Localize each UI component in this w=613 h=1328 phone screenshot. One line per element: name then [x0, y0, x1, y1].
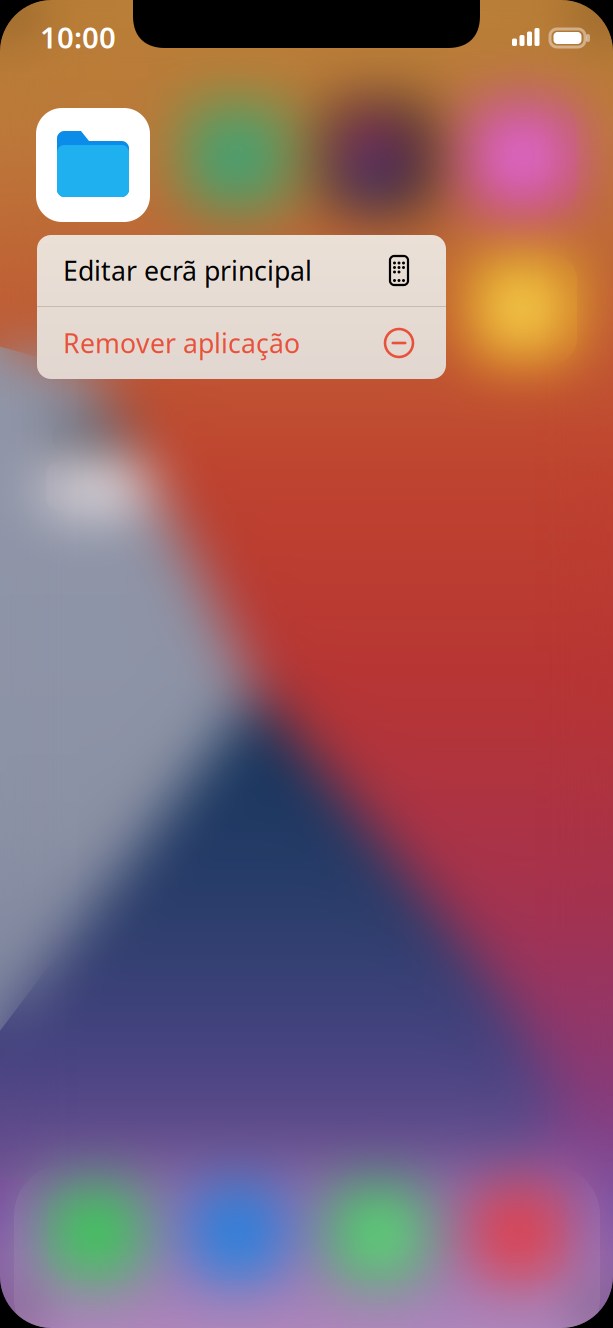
- button[interactable]: Remover aplicação: [37, 307, 446, 379]
- button[interactable]: Ficheiros: [0, 0, 613, 1328]
- staticText: Remover aplicação: [63, 325, 300, 361]
- button[interactable]: Editar ecrã principal: [37, 235, 446, 306]
- staticText: Editar ecrã principal: [63, 253, 312, 288]
- staticText: 10:00: [40, 17, 116, 56]
